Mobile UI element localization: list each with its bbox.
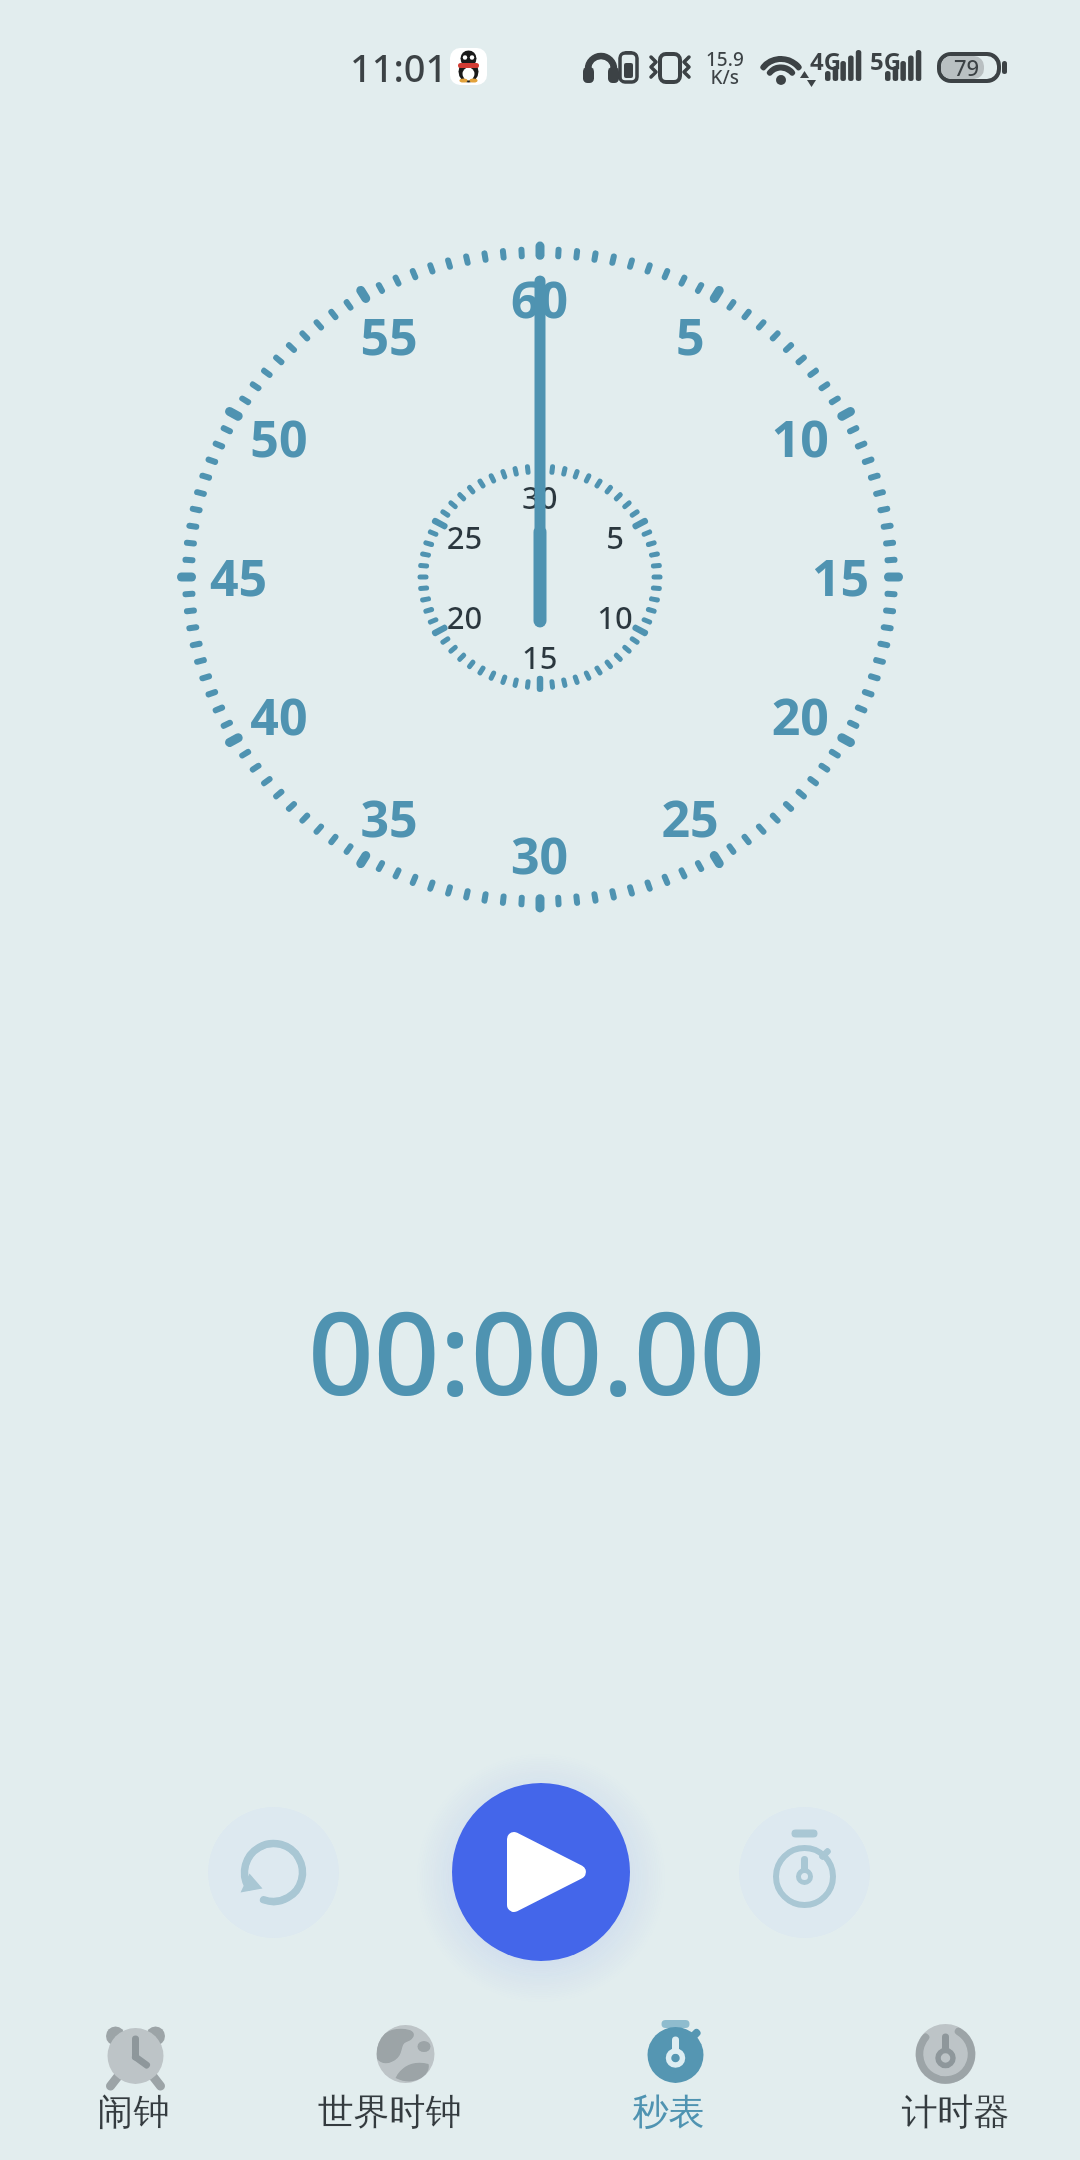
button[interactable] (452, 1783, 630, 1961)
button[interactable] (578, 2008, 773, 2148)
button[interactable] (308, 2008, 503, 2148)
button[interactable] (848, 2008, 1043, 2148)
button[interactable] (38, 2008, 233, 2148)
button[interactable] (208, 1807, 339, 1938)
button[interactable] (739, 1807, 870, 1938)
